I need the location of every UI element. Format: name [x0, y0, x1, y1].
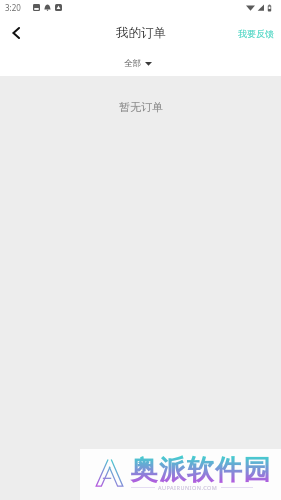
staticText: 我要反馈: [238, 28, 274, 39]
staticText: AUPAIRUNION.COM: [158, 484, 218, 491]
staticText: 我的订单: [116, 25, 166, 41]
button[interactable]: 全部: [114, 56, 162, 71]
staticText: 3:20: [5, 2, 21, 13]
staticText: 暂无订单: [119, 100, 163, 114]
button[interactable]: 我要反馈: [231, 20, 281, 47]
staticText: 奥派软件园: [130, 453, 271, 487]
staticText: 全部: [124, 58, 141, 69]
button[interactable]: Back: [0, 16, 34, 50]
